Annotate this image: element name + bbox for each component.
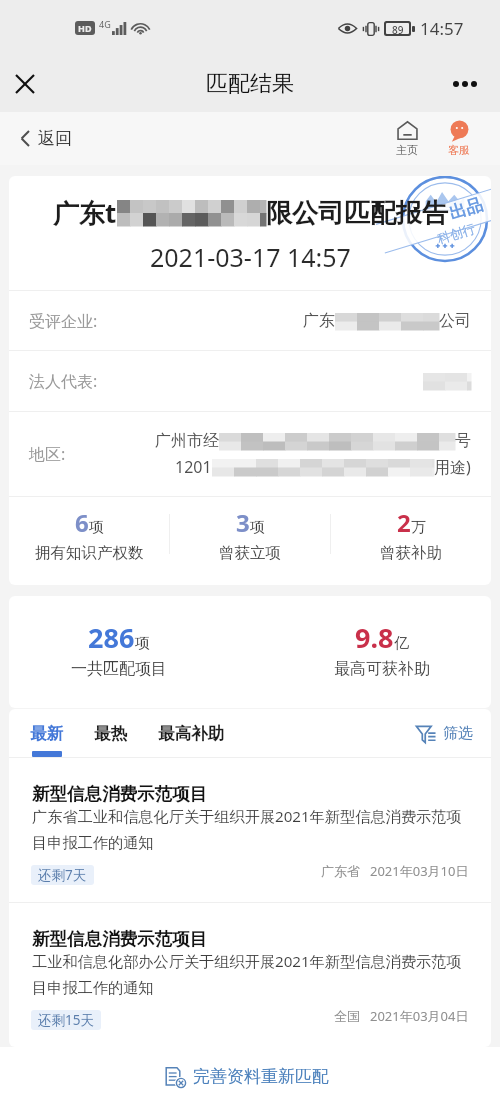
button[interactable]: Close — [2, 61, 48, 107]
staticText: 曾获补助 — [380, 543, 442, 563]
staticText: 还剩15天 — [38, 1011, 94, 1029]
staticText: 地区: — [29, 443, 66, 465]
staticText: 全国 — [334, 1008, 360, 1024]
button[interactable]: 最新 — [30, 717, 63, 757]
staticText: 限公司匹配报告 — [266, 197, 448, 230]
staticText: 万 — [411, 518, 426, 537]
button[interactable]: 完善资料重新匹配 — [141, 1054, 353, 1099]
staticText: 广州市经 — [155, 431, 219, 451]
staticText: 返回 — [38, 128, 72, 149]
staticText: 完善资料重新匹配 — [193, 1066, 329, 1087]
staticText: 用途) — [434, 456, 471, 478]
button[interactable]: 筛选 — [406, 715, 491, 752]
staticText: 286 — [88, 619, 135, 656]
staticText: 法人代表: — [29, 370, 98, 392]
staticText: 受评企业: — [29, 310, 98, 332]
button[interactable]: 返回 — [0, 120, 84, 157]
staticText: 1201 — [175, 456, 212, 478]
staticText: 最高可获补助 — [334, 659, 430, 679]
staticText: 3 — [236, 506, 250, 539]
staticText: 出品 — [447, 194, 485, 224]
staticText: 新型信息消费示范项目 — [32, 783, 207, 805]
button[interactable]: 6 — [9, 500, 169, 569]
staticText: 2 — [397, 506, 411, 539]
staticText: 广东t — [53, 195, 117, 231]
button[interactable]: Customer service — [440, 117, 478, 161]
staticText: 广东省工业和信息化厅关于组织开展2021年新型信息消费示范项目申报工作的通知 — [32, 806, 469, 853]
staticText: 广东省 — [321, 863, 360, 879]
staticText: 2021年03月04日 — [370, 1007, 469, 1025]
staticText: 9.8 — [355, 619, 394, 656]
staticText: 2021-03-17 14:57 — [150, 240, 351, 274]
staticText: 14:57 — [420, 17, 464, 40]
button[interactable]: 最高补助 — [158, 717, 224, 757]
staticText: 项 — [89, 518, 104, 537]
button[interactable]: Home — [388, 117, 426, 161]
staticText: 曾获立项 — [219, 543, 281, 563]
staticText: 公司 — [439, 311, 471, 331]
staticText: 科创行 — [435, 220, 477, 247]
staticText: 项 — [250, 518, 265, 537]
staticText: 4G — [99, 18, 111, 30]
staticText: 拥有知识产权数 — [35, 543, 144, 563]
button[interactable]: 最热 — [94, 717, 127, 757]
staticText: 广东 — [303, 311, 335, 331]
staticText: 匹配结果 — [206, 70, 294, 98]
staticText: 还剩7天 — [38, 866, 87, 884]
staticText: 89 — [392, 23, 404, 34]
staticText: 工业和信息化部办公厅关于组织开展2021年新型信息消费示范项目申报工作的通知 — [32, 951, 469, 998]
button[interactable]: 3 — [170, 500, 330, 569]
button[interactable]: 新型信息消费示范项目 — [9, 758, 491, 902]
button[interactable]: 新型信息消费示范项目 — [9, 903, 491, 1047]
button[interactable]: 286 — [9, 613, 239, 691]
button[interactable]: 9.8 — [261, 613, 491, 691]
staticText: 新型信息消费示范项目 — [32, 928, 207, 950]
staticText: 最新 — [30, 723, 63, 744]
staticText: 号 — [455, 431, 471, 451]
staticText: 最热 — [94, 723, 127, 744]
staticText: 6 — [75, 506, 89, 539]
button[interactable]: 2 — [331, 500, 491, 569]
staticText: 亿 — [394, 634, 409, 653]
button[interactable]: More options — [442, 61, 488, 107]
staticText: 主页 — [396, 143, 418, 157]
staticText: HD — [78, 22, 92, 34]
staticText: 筛选 — [443, 724, 473, 743]
staticText: 最高补助 — [158, 723, 224, 744]
staticText: 2021年03月10日 — [370, 862, 469, 880]
staticText: 一共匹配项目 — [71, 659, 167, 679]
staticText: 项 — [135, 634, 150, 653]
staticText: 客服 — [448, 143, 470, 157]
